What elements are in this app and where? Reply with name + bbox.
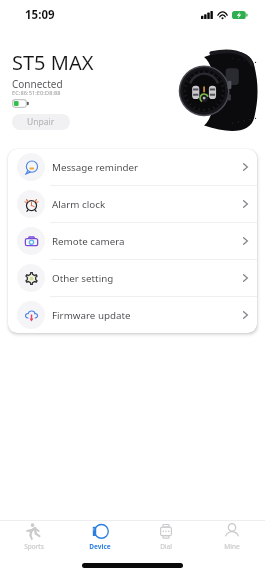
button[interactable]: Firmware update xyxy=(8,297,257,333)
button[interactable]: Mine xyxy=(199,521,265,552)
button[interactable]: Device xyxy=(67,521,133,552)
staticText: Alarm clock xyxy=(52,198,106,211)
staticText: Dial xyxy=(160,542,172,551)
staticText: Mine xyxy=(224,542,240,551)
staticText: Device xyxy=(89,542,111,551)
staticText: Unpair xyxy=(27,116,55,128)
staticText: Sports xyxy=(24,542,44,551)
staticText: Remote camera xyxy=(52,235,125,248)
staticText: Firmware update xyxy=(52,309,131,322)
staticText: EC:86:51:E0:D8:88 xyxy=(12,89,61,97)
button[interactable]: Other setting xyxy=(8,260,257,296)
button[interactable]: Message reminder xyxy=(8,149,257,185)
button[interactable]: Unpair xyxy=(12,114,70,130)
staticText: ST5 MAX xyxy=(12,49,94,76)
button[interactable]: Alarm clock xyxy=(8,186,257,222)
staticText: Message reminder xyxy=(52,161,139,174)
staticText: Connected xyxy=(12,77,63,91)
button[interactable]: Remote camera xyxy=(8,223,257,259)
staticText: 15:09 xyxy=(25,7,55,23)
button[interactable]: Sports xyxy=(0,521,67,552)
staticText: Other setting xyxy=(52,272,114,285)
button[interactable]: Dial xyxy=(133,521,199,552)
